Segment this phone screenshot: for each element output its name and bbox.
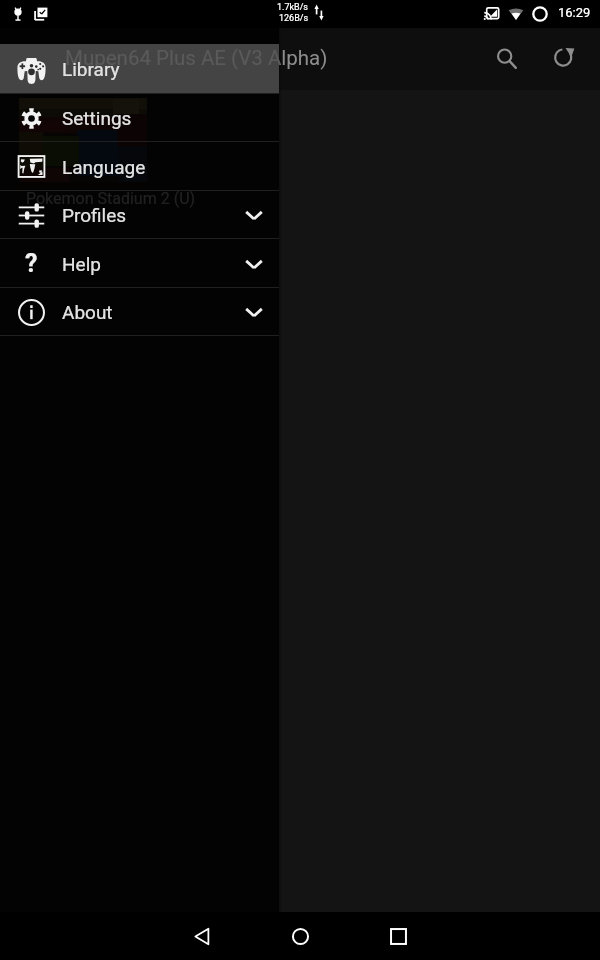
button[interactable]: Settings [0, 94, 279, 142]
button[interactable]: Refresh [540, 33, 588, 81]
staticText: Mupen64 Plus AE (V3 Alpha) [65, 46, 328, 70]
button[interactable]: Library [0, 44, 279, 94]
button[interactable]: Profiles [0, 191, 279, 239]
staticText: 1.7kB/s [277, 2, 309, 13]
button[interactable]: Back [178, 912, 226, 960]
button[interactable]: About [0, 288, 279, 336]
button[interactable]: Language [0, 142, 279, 191]
button[interactable]: Search [483, 35, 531, 83]
staticText: Profiles [62, 204, 127, 226]
staticText: 126B/s [279, 13, 309, 24]
staticText: Language [62, 156, 146, 178]
staticText: 16:29 [558, 5, 591, 20]
button[interactable]: Home [276, 912, 324, 960]
staticText: Library [62, 58, 120, 80]
button[interactable]: ? [0, 239, 279, 288]
button[interactable]: Recents [374, 912, 422, 960]
staticText: About [62, 301, 113, 323]
staticText: Help [62, 253, 101, 275]
staticText: ? [25, 249, 38, 278]
staticText: Settings [62, 107, 132, 129]
staticText: Pokemon Stadium 2 (U) [26, 189, 196, 208]
